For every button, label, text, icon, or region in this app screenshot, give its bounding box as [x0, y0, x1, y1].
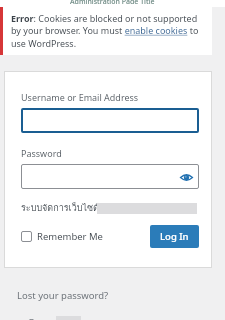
button[interactable]: Lost your password?: [17, 289, 109, 302]
button[interactable]: ← Go to: [17, 316, 81, 320]
staticText: Administration Page Title: [70, 0, 155, 4]
staticText: Password: [21, 147, 62, 159]
staticText: Log In: [160, 230, 189, 243]
staticText: ← Go to: [17, 316, 52, 320]
button[interactable]: Show password: [21, 164, 199, 189]
staticText: Error: Cookies are blocked or not suppor…: [11, 12, 206, 50]
staticText: Username or Email Address: [21, 91, 139, 103]
button[interactable]: Remember Me: [21, 230, 103, 243]
staticText: ระบบจัดการเว็บไซต์: [21, 201, 99, 215]
button[interactable]: Log In: [150, 225, 199, 248]
button[interactable]: Show password: [179, 170, 193, 184]
staticText: Remember Me: [37, 230, 103, 243]
button[interactable]: [21, 108, 199, 133]
